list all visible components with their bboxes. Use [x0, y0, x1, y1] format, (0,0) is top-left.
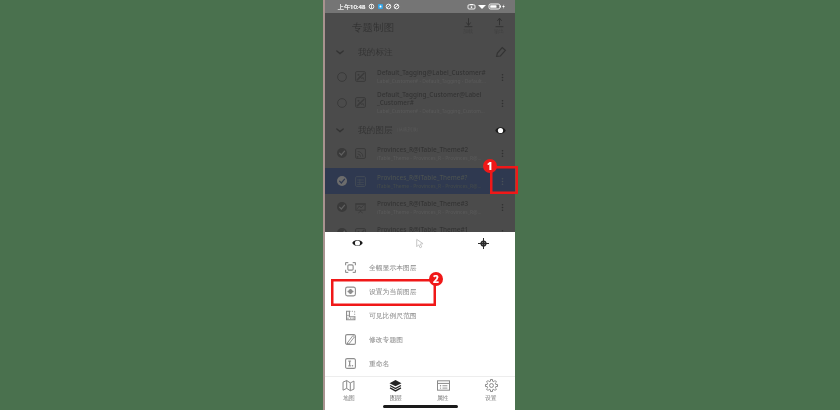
staticText: 地图 [343, 394, 355, 401]
staticText: 1 [487, 159, 493, 173]
staticText: 我的标注 [358, 47, 393, 58]
staticText: 重命名 [369, 359, 390, 368]
button[interactable]: Provinces_R@iTable_Theme#2 [325, 140, 515, 166]
staticText: 修改专题图 [369, 335, 403, 344]
button[interactable]: Visibility [325, 232, 389, 254]
button[interactable]: Center [452, 232, 515, 254]
button[interactable]: Provinces_R@iTable_Theme#3 [325, 194, 515, 220]
button[interactable]: Select [389, 232, 452, 254]
staticText: 属性 [437, 394, 449, 401]
button[interactable]: 加载 [457, 18, 479, 34]
staticText: 上午10:48 [338, 3, 366, 11]
button[interactable]: More options [496, 147, 508, 159]
staticText: iTable_Theme - Provinces_R - Provinces_R… [377, 183, 482, 190]
staticText: iTable_Theme - Provinces_R - Provinces_R… [377, 235, 482, 242]
button[interactable]: Provinces_R@iTable_Theme#1 [325, 220, 515, 246]
staticText: 设置为当前图层 [369, 287, 417, 296]
button[interactable]: 我的标注 [325, 41, 515, 63]
button[interactable]: 我的图层 [325, 119, 515, 141]
button[interactable]: More options [496, 97, 508, 109]
button[interactable]: More options [496, 71, 508, 83]
staticText: 专题制图 [352, 21, 394, 34]
button[interactable]: 地图 [325, 377, 372, 403]
button[interactable]: More options [496, 201, 508, 213]
button[interactable]: More options [496, 227, 508, 239]
staticText: Provinces_R@iTable_Theme#1 [377, 225, 469, 234]
button[interactable]: Edit [496, 47, 506, 57]
button[interactable]: 修改专题图 [325, 327, 515, 351]
button[interactable]: 设置为当前图层 [325, 279, 515, 303]
staticText: Provinces_R@iTable_Theme#3 [377, 199, 469, 208]
staticText: Provinces_R@iTable_Theme#2 [377, 145, 469, 154]
staticText: Label_Customer# - Default_Tagging - Defa… [377, 78, 486, 85]
button[interactable]: 属性 [419, 377, 467, 403]
button[interactable]: More options [496, 175, 508, 187]
button[interactable]: 输出 [488, 18, 510, 34]
staticText: 2 [433, 272, 439, 286]
button[interactable]: 图层 [372, 377, 419, 403]
button[interactable]: Default_Tagging@Label_Customer# [325, 64, 515, 89]
staticText: 全幅显示本图层 [369, 263, 417, 272]
button[interactable]: Default_Tagging_Customer@Label _Customer… [325, 88, 515, 117]
staticText: Default_Tagging@Label_Customer# [377, 68, 486, 77]
staticText: 我的图层 [358, 125, 393, 136]
button[interactable]: Provinces_R@iTable_Theme#? [325, 168, 515, 194]
staticText: Provinces_R@iTable_Theme#? [377, 173, 468, 182]
staticText: 图层 [390, 394, 402, 401]
button[interactable]: 设置 [467, 377, 515, 403]
button[interactable]: 全幅显示本图层 [325, 255, 515, 279]
button[interactable]: 重命名 [325, 351, 515, 375]
staticText: 设置 [485, 394, 497, 401]
staticText: 可见比例尺范围 [369, 311, 417, 320]
button[interactable]: 可见比例尺范围 [325, 303, 515, 327]
staticText: Default_Tagging_Customer@Label _Customer… [377, 90, 482, 107]
button[interactable]: Visibility [495, 126, 506, 135]
